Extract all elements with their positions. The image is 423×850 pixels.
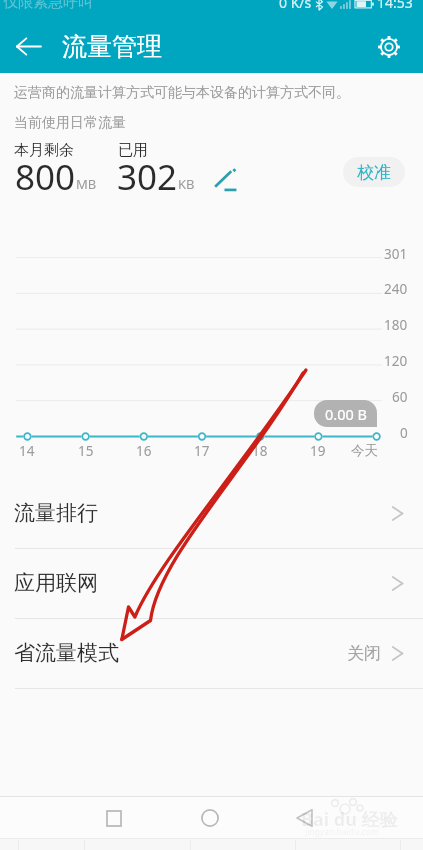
staticText: 仅限紧急呼叫 bbox=[3, 0, 93, 11]
button[interactable]: 省流量模式 bbox=[0, 618, 423, 688]
staticText: 已用 bbox=[118, 141, 148, 160]
button[interactable]: 设置 bbox=[363, 21, 415, 73]
staticText: 15 bbox=[78, 442, 94, 460]
button[interactable]: 校准 bbox=[343, 157, 405, 187]
staticText: KB bbox=[178, 175, 195, 193]
staticText: 800 bbox=[15, 153, 76, 201]
staticText: 省流量模式 bbox=[14, 640, 119, 666]
staticText: 302 bbox=[117, 153, 178, 201]
button[interactable]: 主页 bbox=[189, 798, 231, 838]
staticText: MB bbox=[76, 175, 97, 193]
staticText: 17 bbox=[194, 442, 210, 460]
button[interactable]: 应用联网 bbox=[0, 548, 423, 618]
staticText: 运营商的流量计算方式可能与本设备的计算方式不同。 bbox=[14, 84, 350, 102]
staticText: 120 bbox=[384, 352, 408, 370]
staticText: 流量管理 bbox=[62, 31, 162, 62]
button[interactable]: 返回 bbox=[2, 20, 54, 72]
staticText: 19 bbox=[310, 442, 326, 460]
button[interactable]: 编辑 bbox=[212, 166, 238, 192]
staticText: 0 K/s bbox=[279, 0, 312, 11]
staticText: 本月剩余 bbox=[14, 141, 74, 160]
button[interactable]: 返回 bbox=[283, 798, 325, 838]
staticText: 今天 bbox=[351, 442, 378, 459]
staticText: 应用联网 bbox=[14, 570, 98, 596]
staticText: 当前使用日常流量 bbox=[14, 114, 126, 132]
staticText: 0.00 B bbox=[325, 404, 367, 424]
staticText: 流量排行 bbox=[14, 500, 98, 526]
staticText: 14 bbox=[19, 442, 35, 460]
staticText: 301 bbox=[384, 245, 408, 263]
staticText: 校准 bbox=[357, 162, 391, 183]
staticText: 0 bbox=[400, 424, 408, 442]
staticText: Bai du 经验 bbox=[301, 807, 398, 832]
button[interactable]: 流量排行 bbox=[0, 478, 423, 548]
staticText: 关闭 bbox=[347, 643, 381, 664]
staticText: 16 bbox=[136, 442, 152, 460]
staticText: 14:53 bbox=[377, 0, 413, 11]
staticText: 180 bbox=[384, 316, 408, 334]
button[interactable]: 最近任务 bbox=[93, 798, 135, 838]
staticText: 60 bbox=[392, 388, 408, 406]
staticText: 240 bbox=[384, 280, 408, 298]
staticText: 18 bbox=[252, 442, 268, 460]
staticText: jingyan.baidu.com bbox=[305, 826, 379, 838]
